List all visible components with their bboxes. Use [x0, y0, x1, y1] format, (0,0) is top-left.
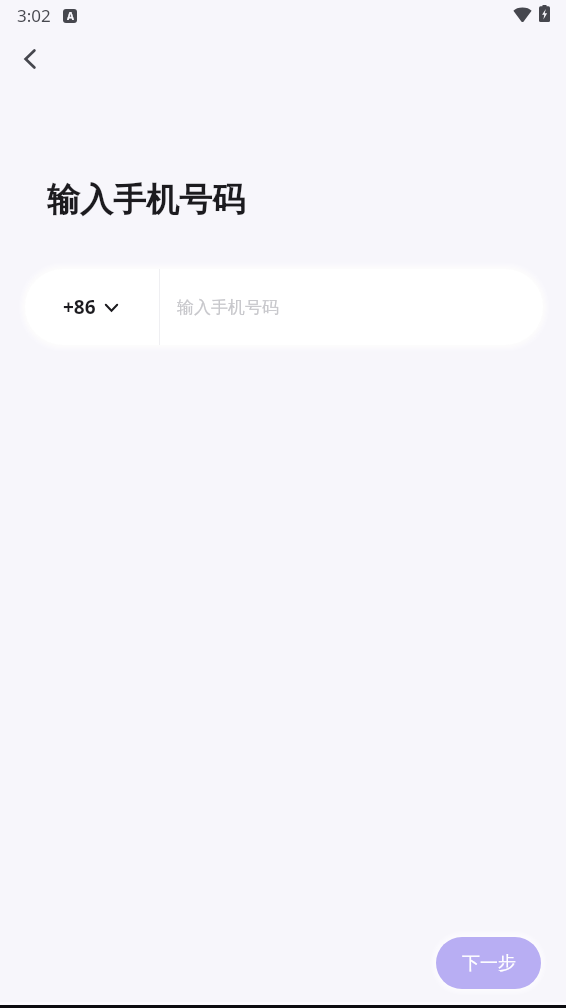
staticText: 输入手机号码: [47, 179, 245, 221]
button[interactable]: 下一步: [436, 937, 541, 989]
staticText: 输入手机号码: [177, 297, 279, 318]
staticText: 3:02: [17, 4, 51, 27]
button[interactable]: +86: [25, 269, 159, 345]
button[interactable]: Back: [6, 35, 54, 83]
staticText: A: [67, 9, 74, 23]
button[interactable]: 输入手机号码: [160, 269, 543, 345]
staticText: +86: [63, 294, 96, 320]
staticText: 下一步: [462, 952, 516, 975]
